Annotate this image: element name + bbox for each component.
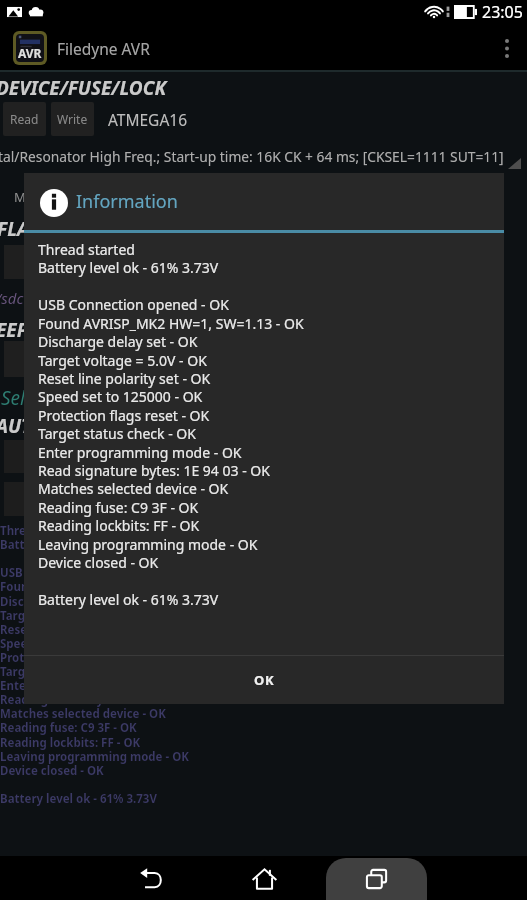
staticText: ATMEGA16 xyxy=(108,109,188,130)
staticText: USB Connection opened - OK xyxy=(38,295,229,314)
staticText: MEMORY xyxy=(14,188,71,206)
staticText: Discharge delay set - OK xyxy=(38,332,198,351)
staticText: Thread started xyxy=(38,240,135,259)
staticText: Matches selected device - OK xyxy=(0,706,166,722)
button[interactable]: Recent apps xyxy=(326,858,427,900)
staticText: Speed set to 125000 - OK xyxy=(38,387,203,406)
button[interactable]: Back xyxy=(114,856,188,900)
staticText: Reading fuse: C9 3F - OK xyxy=(38,498,199,517)
staticText: USB Connection opened - OK xyxy=(0,565,164,581)
staticText: Enter programming mode - OK xyxy=(0,678,175,694)
staticText: Target status check - OK xyxy=(38,424,196,443)
staticText: /sdcard xyxy=(0,288,47,308)
staticText: Battery level ok - 61% 3.73V xyxy=(38,590,219,609)
staticText: Filedyne AVR xyxy=(57,38,150,59)
staticText: Target voltage = 5.0V - OK xyxy=(38,351,207,370)
button[interactable]: OK xyxy=(24,656,504,704)
staticText: Discharge delay set - OK xyxy=(0,594,139,610)
staticText: Battery level ok - 61% 3.73V xyxy=(0,791,157,807)
staticText: Leaving programming mode - OK xyxy=(38,535,258,554)
staticText: Found AVRISP_MK2 HW=1, SW=1.13 - OK xyxy=(38,314,304,333)
staticText: Reset line polarity set - OK xyxy=(38,369,211,388)
button[interactable]: Write xyxy=(51,102,94,136)
staticText: Information xyxy=(76,189,178,214)
staticText: Read xyxy=(10,111,39,127)
staticText: Speed set to 125000 - OK xyxy=(0,636,140,652)
staticText: Protection flags reset - OK xyxy=(38,406,210,425)
staticText: Thread started xyxy=(0,523,85,539)
staticText: OK xyxy=(254,671,275,689)
staticText: FLASH xyxy=(0,216,53,242)
staticText: Read signature bytes: 1E 94 03 - OK xyxy=(38,461,270,480)
staticText: Device closed - OK xyxy=(38,553,159,572)
staticText: Target voltage = 5.0V - OK xyxy=(0,608,146,624)
staticText: Reading lockbits: FF - OK xyxy=(38,516,200,535)
staticText: Write xyxy=(57,111,88,127)
staticText: Select xyxy=(1,385,50,411)
staticText: EEPROM xyxy=(0,317,71,343)
button[interactable]: Read xyxy=(3,102,46,136)
staticText: DEVICE/FUSE/LOCK xyxy=(0,75,167,101)
staticText: Leaving programming mode - OK xyxy=(0,749,189,765)
staticText: Protection flags reset - OK xyxy=(0,650,150,666)
staticText: Reading lockbits: FF - OK xyxy=(0,735,141,751)
staticText: tal/Resonator High Freq.; Start-up time:… xyxy=(0,147,504,166)
staticText: Enter programming mode - OK xyxy=(38,443,242,462)
button[interactable]: More options xyxy=(487,24,527,72)
staticText: Reading fuse: C9 3F - OK xyxy=(0,720,137,736)
staticText: Reset line polarity set - OK xyxy=(0,622,152,638)
staticText: Battery level ok - 61% 3.73V xyxy=(38,258,219,277)
staticText: 23:05 xyxy=(482,1,523,23)
staticText: Read signature bytes: 1E 94 03 - OK xyxy=(0,692,199,708)
button[interactable]: Home xyxy=(227,856,301,900)
staticText: AVR xyxy=(18,45,42,61)
staticText: Matches selected device - OK xyxy=(38,479,229,498)
staticText: Found AVRISP_MK2 HW=1, SW=1.13 - OK xyxy=(0,579,225,595)
staticText: AUTO xyxy=(0,413,45,439)
staticText: Device closed - OK xyxy=(0,763,104,779)
staticText: Target status check - OK xyxy=(0,664,139,680)
staticText: Battery level ok - 61% 3.73V xyxy=(0,537,157,553)
